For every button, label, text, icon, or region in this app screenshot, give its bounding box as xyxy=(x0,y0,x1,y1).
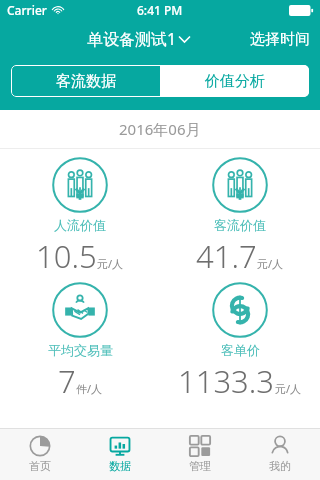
button[interactable]: 我的 xyxy=(240,429,320,480)
button[interactable]: 客流数据 xyxy=(11,65,160,97)
staticText: 10.5 xyxy=(36,235,97,274)
button[interactable]: 单设备测试1 xyxy=(81,24,196,54)
staticText: 价值分析 xyxy=(205,72,265,91)
button[interactable]: 管理 xyxy=(160,429,240,480)
staticText: 元/人 xyxy=(257,256,284,271)
button[interactable]: 人流价值 xyxy=(0,149,160,274)
button[interactable]: 平均交易量 xyxy=(0,274,160,399)
staticText: 元/人 xyxy=(275,381,302,396)
button[interactable]: 数据 xyxy=(80,429,160,480)
staticText: 2016年06月 xyxy=(119,119,201,139)
staticText: 客单价 xyxy=(221,342,260,358)
staticText: 客流数据 xyxy=(56,72,116,91)
staticText: Carrier xyxy=(7,2,47,18)
button[interactable]: 价值分析 xyxy=(160,65,309,97)
staticText: 我的 xyxy=(269,459,291,473)
staticText: 首页 xyxy=(29,459,51,473)
staticText: 元/人 xyxy=(97,256,124,271)
button[interactable]: 选择时间 xyxy=(240,24,320,55)
staticText: 41.7 xyxy=(196,235,257,274)
staticText: 客流价值 xyxy=(214,217,266,233)
button[interactable]: 客流价值 xyxy=(160,149,320,274)
button[interactable]: 首页 xyxy=(0,429,80,480)
staticText: 6:41 PM xyxy=(137,2,183,18)
staticText: 人流价值 xyxy=(54,217,106,233)
staticText: 1133.3 xyxy=(178,360,275,399)
staticText: 管理 xyxy=(189,459,211,473)
staticText: 平均交易量 xyxy=(48,342,113,358)
staticText: 单设备测试1 xyxy=(87,28,177,50)
button[interactable]: 客单价 xyxy=(160,274,320,399)
staticText: 数据 xyxy=(109,459,131,473)
staticText: 件/人 xyxy=(76,381,103,396)
staticText: 7 xyxy=(58,360,76,399)
